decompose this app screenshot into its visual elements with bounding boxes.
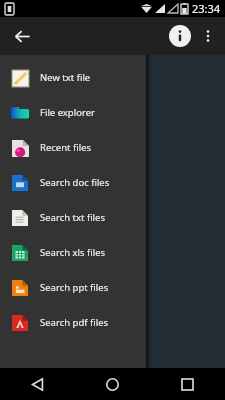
staticText: New txt file (40, 71, 91, 84)
button[interactable]: More options (195, 23, 221, 49)
button[interactable]: Back (0, 368, 75, 400)
staticText: Search doc files (40, 176, 110, 189)
button[interactable]: Search xls files (0, 235, 146, 270)
staticText: Search ppt files (40, 281, 109, 294)
button[interactable]: Search pdf files (0, 305, 146, 340)
button[interactable]: Home (75, 368, 150, 400)
button[interactable]: Info (165, 21, 195, 51)
staticText: Search txt files (40, 211, 105, 224)
staticText: 23:34 (192, 1, 221, 16)
button[interactable]: Back (8, 22, 36, 50)
staticText: Search xls files (40, 246, 106, 259)
button[interactable]: Recents (150, 368, 225, 400)
button[interactable]: Search ppt files (0, 270, 146, 305)
staticText: File explorer (40, 106, 95, 119)
button[interactable]: File explorer (0, 95, 146, 130)
staticText: Search pdf files (40, 316, 109, 329)
button[interactable]: Search txt files (0, 200, 146, 235)
button[interactable]: Search doc files (0, 165, 146, 200)
button[interactable]: New txt file (0, 60, 146, 95)
staticText: Recent files (40, 141, 92, 154)
button[interactable]: Recent files (0, 130, 146, 165)
